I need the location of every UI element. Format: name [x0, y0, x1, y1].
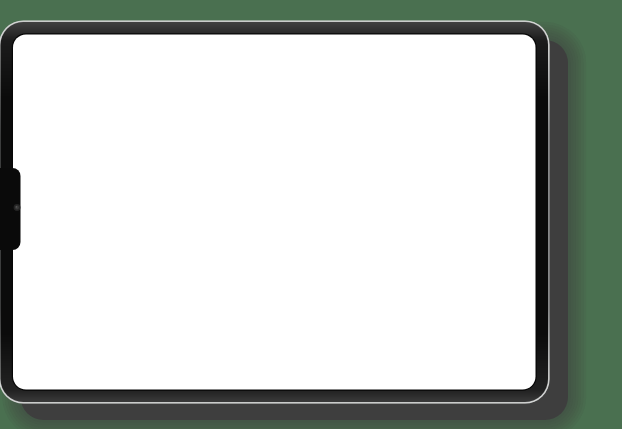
other: Tablet device frame showing a blank app …: [0, 0, 622, 429]
